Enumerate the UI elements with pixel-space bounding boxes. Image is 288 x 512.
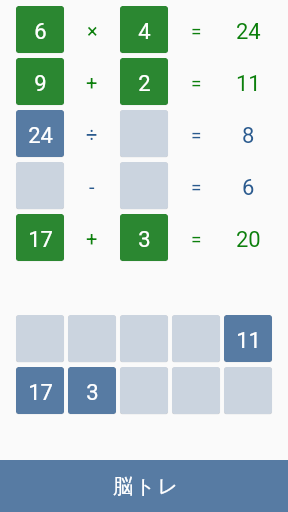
button[interactable]: 6 bbox=[16, 6, 64, 53]
button[interactable]: 3 bbox=[68, 367, 116, 414]
staticText: 11 bbox=[236, 71, 261, 97]
staticText: 脳トレ bbox=[113, 474, 180, 499]
staticText: 8 bbox=[242, 123, 255, 149]
staticText: ÷ bbox=[86, 123, 98, 146]
staticText: + bbox=[86, 227, 98, 250]
staticText: 11 bbox=[236, 328, 261, 354]
staticText: × bbox=[87, 19, 98, 42]
staticText: 6 bbox=[242, 175, 255, 201]
staticText: 4 bbox=[138, 19, 151, 45]
staticText: 9 bbox=[34, 71, 47, 97]
button[interactable]: 4 bbox=[120, 6, 168, 53]
staticText: 20 bbox=[236, 227, 261, 253]
staticText: = bbox=[191, 124, 202, 146]
button[interactable]: 17 bbox=[16, 214, 64, 261]
button[interactable]: 2 bbox=[120, 58, 168, 105]
staticText: = bbox=[191, 20, 202, 42]
staticText: 17 bbox=[28, 227, 53, 253]
staticText: 3 bbox=[86, 380, 99, 406]
staticText: 2 bbox=[138, 71, 151, 97]
staticText: = bbox=[191, 176, 202, 198]
staticText: - bbox=[89, 175, 95, 198]
button[interactable]: 脳トレ bbox=[0, 460, 288, 512]
staticText: 17 bbox=[28, 380, 53, 406]
staticText: 24 bbox=[28, 123, 53, 149]
button[interactable]: 9 bbox=[16, 58, 64, 105]
staticText: = bbox=[191, 72, 202, 94]
button[interactable]: 17 bbox=[16, 367, 64, 414]
staticText: 3 bbox=[138, 227, 151, 253]
button[interactable]: 11 bbox=[224, 315, 272, 362]
staticText: + bbox=[86, 71, 98, 94]
button[interactable]: 3 bbox=[120, 214, 168, 261]
staticText: = bbox=[191, 228, 202, 250]
staticText: 24 bbox=[236, 19, 261, 45]
staticText: 6 bbox=[34, 19, 47, 45]
button[interactable]: 24 bbox=[16, 110, 64, 157]
